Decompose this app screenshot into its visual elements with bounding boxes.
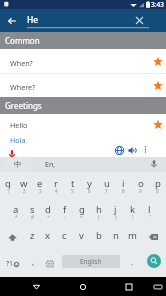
button[interactable]: h [90,198,107,224]
staticText: c [62,229,67,242]
button[interactable]: Voice input [147,157,160,170]
button[interactable]: y [81,172,98,198]
button[interactable]: 中 [4,157,31,172]
staticText: l [148,203,151,216]
button[interactable]: En, [40,157,60,172]
button[interactable]: n [107,224,124,250]
staticText: 5 [71,188,74,194]
staticText: 7 [105,188,108,194]
staticText: ) [115,214,117,220]
staticText: , [32,256,35,267]
staticText: 3 [39,188,42,194]
button[interactable]: Play audio [126,144,138,156]
staticText: i [122,177,125,190]
staticText: k [130,203,136,216]
staticText: q [5,177,11,190]
staticText: 0 [156,188,159,194]
staticText: n [113,229,119,242]
button[interactable]: Home [76,280,90,294]
staticText: f [63,203,67,216]
staticText: g [79,203,85,216]
button[interactable]: Back [29,280,43,294]
button[interactable]: Hello [0,114,166,157]
button[interactable]: d [40,198,56,224]
button[interactable]: Change language [42,250,57,277]
staticText: d [45,203,51,216]
staticText: ! [132,214,134,220]
button[interactable]: When? [0,49,166,73]
button[interactable]: m [124,224,141,250]
button[interactable]: . [126,250,139,277]
button[interactable]: p [149,172,166,198]
button[interactable]: x [40,224,56,250]
button[interactable]: g [73,198,90,224]
button[interactable]: Overview [122,280,136,294]
staticText: 3:43 [151,0,164,9]
button[interactable]: Shift [0,224,24,250]
staticText: 6 [88,188,91,194]
staticText: s [30,203,35,216]
button[interactable]: u [98,172,115,198]
button[interactable]: Delete [141,224,166,250]
button[interactable]: e [32,172,48,198]
staticText: " [149,214,151,220]
staticText: Greetings [5,100,42,111]
button[interactable]: l [141,198,158,224]
button[interactable]: q [0,172,16,198]
staticText: y [87,177,92,190]
staticText: He [27,14,39,26]
staticText: Hola [10,135,26,145]
staticText: English [80,257,102,266]
button[interactable]: More options [140,144,150,154]
staticText: m [128,229,137,242]
staticText: # [31,214,34,220]
staticText: 1 [7,188,10,194]
button[interactable]: Search [147,254,161,268]
button[interactable]: ?1 [1,250,23,277]
button[interactable]: Switch keyboard [151,280,164,293]
staticText: When? [10,58,33,68]
staticText: Common [5,35,40,46]
staticText: v [79,229,84,242]
staticText: b [96,229,102,242]
button[interactable]: s [24,198,40,224]
button[interactable]: k [124,198,141,224]
staticText: t [71,177,75,190]
staticText: = [80,214,83,220]
button[interactable]: Bookmark [151,78,165,92]
button[interactable]: f [56,198,73,224]
button[interactable]: Where? [0,74,166,97]
button[interactable]: z [24,224,40,250]
staticText: Where? [10,82,36,92]
button[interactable]: o [132,172,149,198]
button[interactable]: English [62,255,120,268]
button[interactable]: c [56,224,73,250]
staticText: z [30,229,35,242]
staticText: u [104,177,110,190]
staticText: 2 [23,188,26,194]
staticText: a [13,203,19,216]
staticText: e [37,177,43,190]
button[interactable]: a [8,198,24,224]
staticText: 9 [139,188,142,194]
button[interactable]: Translate on web [113,144,125,156]
staticText: . [131,256,134,267]
staticText: w [20,177,28,190]
button[interactable]: b [90,224,107,250]
staticText: - [64,214,66,220]
button[interactable]: , [26,250,40,277]
staticText: 中 [14,160,22,169]
staticText: r [54,177,58,190]
button[interactable]: t [64,172,81,198]
staticText: h [96,203,102,216]
button[interactable]: Navigate up [4,13,20,29]
button[interactable]: w [16,172,32,198]
button[interactable]: Bookmark [151,117,165,131]
staticText: Hello [10,120,28,130]
button[interactable]: i [115,172,132,198]
button[interactable]: r [48,172,64,198]
button[interactable]: Bookmark [151,54,165,68]
button[interactable]: j [107,198,124,224]
button[interactable]: Clear query [133,14,146,27]
button[interactable]: v [73,224,90,250]
